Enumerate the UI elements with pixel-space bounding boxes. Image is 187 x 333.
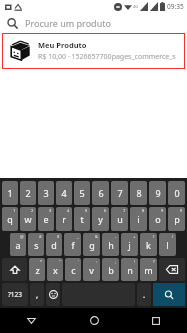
button[interactable]: v: [83, 258, 100, 281]
button[interactable]: Backspace: [159, 258, 185, 281]
button[interactable]: 0: [168, 181, 185, 205]
staticText: 0: [180, 208, 183, 213]
staticText: p: [174, 213, 180, 225]
button[interactable]: Home: [63, 308, 125, 333]
staticText: 2: [31, 208, 34, 213]
staticText: o: [155, 213, 161, 225]
staticText: 6: [104, 208, 107, 213]
staticText: &: [95, 234, 98, 239]
staticText: v: [89, 264, 94, 276]
staticText: Meu Produto: [38, 40, 87, 50]
button[interactable]: 9: [149, 181, 166, 205]
staticText: 6: [98, 187, 104, 199]
button[interactable]: p: [168, 207, 185, 231]
staticText: @: [20, 234, 24, 239]
button[interactable]: ?123: [2, 283, 28, 306]
button[interactable]: .: [137, 283, 151, 306]
staticText: 1: [13, 208, 16, 213]
button[interactable]: u: [111, 207, 128, 231]
staticText: 9: [155, 187, 161, 199]
button[interactable]: n: [121, 258, 138, 281]
staticText: 0: [174, 187, 180, 199]
button[interactable]: t: [74, 207, 90, 231]
staticText: i: [137, 213, 140, 225]
button[interactable]: o: [149, 207, 166, 231]
staticText: 7: [117, 187, 123, 199]
staticText: r: [62, 213, 66, 225]
staticText: $: [57, 234, 60, 239]
staticText: 3: [49, 208, 52, 213]
staticText: Procure um produto: [25, 17, 111, 29]
button[interactable]: s: [28, 233, 44, 256]
button[interactable]: g: [83, 233, 100, 256]
staticText: m: [144, 264, 153, 276]
staticText: !: [134, 259, 136, 264]
staticText: k: [146, 239, 151, 251]
button[interactable]: h: [102, 233, 119, 256]
button[interactable]: Shift: [2, 258, 27, 281]
button[interactable]: f: [64, 233, 81, 256]
staticText: 2: [25, 187, 31, 199]
staticText: ?123: [8, 290, 22, 299]
staticText: 3: [43, 187, 49, 199]
button[interactable]: c: [65, 258, 81, 281]
staticText: z: [35, 264, 40, 276]
staticText: l: [166, 239, 169, 251]
staticText: s: [34, 239, 39, 251]
staticText: x: [53, 264, 58, 276]
staticText: ': [78, 259, 79, 264]
button[interactable]: k: [140, 233, 157, 256]
button[interactable]: ,: [30, 283, 44, 306]
staticText: 8: [136, 187, 142, 199]
staticText: ,: [36, 289, 39, 300]
staticText: b: [108, 264, 114, 276]
staticText: (: [153, 234, 155, 239]
button[interactable]: w: [20, 207, 36, 231]
staticText: 7: [123, 208, 126, 213]
button[interactable]: e: [38, 207, 54, 231]
button[interactable]: Search: [153, 283, 185, 306]
staticText: .: [143, 289, 146, 300]
staticText: d: [51, 239, 57, 251]
button[interactable]: 5: [74, 181, 90, 205]
button[interactable]: Recent apps: [125, 308, 187, 333]
staticText: 4G: [133, 4, 139, 9]
staticText: c: [71, 264, 76, 276]
staticText: f: [71, 239, 75, 251]
staticText: _: [77, 234, 79, 239]
button[interactable]: d: [46, 233, 62, 256]
staticText: g: [89, 239, 95, 251]
button[interactable]: q: [2, 207, 18, 231]
button[interactable]: a: [10, 233, 26, 256]
button[interactable]: r: [56, 207, 72, 231]
button[interactable]: z: [29, 258, 45, 281]
staticText: q: [7, 213, 13, 225]
button[interactable]: 8: [130, 181, 147, 205]
staticText: *: [40, 259, 43, 264]
button[interactable]: 6: [92, 181, 109, 205]
button[interactable]: Back: [0, 308, 63, 333]
button[interactable]: Emoji: [46, 283, 60, 306]
staticText: h: [108, 239, 114, 251]
staticText: j: [128, 239, 131, 251]
button[interactable]: b: [102, 258, 119, 281]
button[interactable]: 4: [56, 181, 72, 205]
button[interactable]: 1: [2, 181, 18, 205]
button[interactable]: 2: [20, 181, 36, 205]
button[interactable]: 3: [38, 181, 54, 205]
button[interactable]: m: [140, 258, 157, 281]
staticText: e: [43, 213, 49, 225]
button[interactable]: i: [130, 207, 147, 231]
button[interactable]: 7: [111, 181, 128, 205]
button[interactable]: Meu Produto: [3, 34, 184, 68]
staticText: 09:35: [167, 2, 184, 11]
button[interactable]: j: [121, 233, 138, 256]
staticText: R$ 10,00 · 1526657700pages_commerce_s: [38, 52, 176, 62]
button[interactable]: Procure um produto: [0, 13, 187, 33]
button[interactable]: y: [92, 207, 109, 231]
staticText: 4: [67, 208, 70, 213]
staticText: 5: [79, 187, 85, 199]
button[interactable]: l: [159, 233, 176, 256]
button[interactable]: x: [47, 258, 63, 281]
